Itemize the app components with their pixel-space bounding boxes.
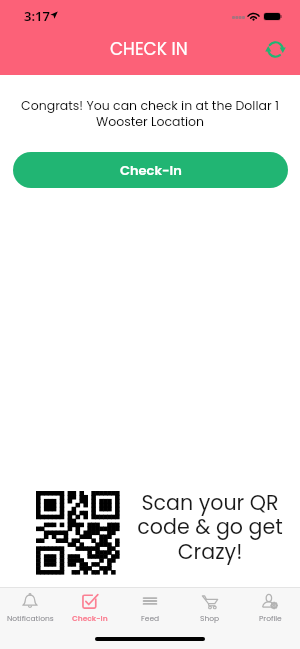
- staticText: CHECK IN: [110, 37, 188, 61]
- staticText: Scan your QR code & go get Crazy!: [131, 488, 289, 567]
- staticText: Check-In: [120, 161, 182, 179]
- staticText: Shop: [200, 613, 220, 623]
- button[interactable]: Notifications: [0, 588, 60, 623]
- staticText: Profile: [259, 613, 282, 623]
- staticText: Feed: [141, 613, 160, 623]
- button[interactable]: Feed: [120, 588, 180, 623]
- button[interactable]: Refresh: [262, 36, 288, 62]
- staticText: Check-In: [72, 613, 108, 623]
- staticText: Congrats! You can check in at the Dollar…: [8, 97, 292, 130]
- staticText: 3:17: [24, 7, 50, 25]
- button[interactable]: Check-In: [60, 588, 120, 623]
- button[interactable]: Check-In: [13, 152, 288, 188]
- button[interactable]: Shop: [180, 588, 240, 623]
- staticText: Notifications: [7, 613, 54, 623]
- button[interactable]: Profile: [240, 588, 300, 623]
